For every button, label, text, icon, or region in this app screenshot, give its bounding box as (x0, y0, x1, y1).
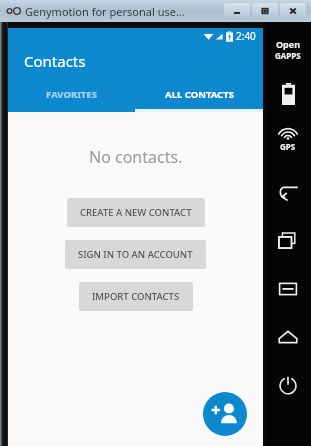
staticText: Open (276, 38, 301, 50)
staticText: GPS (280, 141, 296, 152)
button[interactable]: Home (265, 324, 311, 350)
button[interactable]: Add contact (203, 392, 247, 436)
button[interactable]: Maximize (252, 3, 278, 19)
button[interactable]: Power (265, 372, 311, 398)
staticText: Contacts (24, 51, 86, 71)
button[interactable]: ALL CONTACTS (135, 79, 263, 109)
button[interactable]: Back (265, 178, 311, 204)
button[interactable]: IMPORT CONTACTS (79, 282, 193, 311)
staticText: GAPPS (275, 50, 301, 61)
button[interactable]: Menu (265, 276, 311, 302)
button[interactable]: Recent apps (265, 228, 311, 254)
staticText: ALL CONTACTS (165, 88, 234, 101)
button[interactable]: Open (265, 38, 311, 61)
staticText: CREATE A NEW CONTACT (80, 206, 192, 219)
button[interactable]: GPS (265, 129, 311, 152)
staticText: No contacts. (89, 146, 183, 168)
staticText: Genymotion for personal use... (25, 4, 185, 19)
staticText: IMPORT CONTACTS (92, 290, 180, 303)
button[interactable]: Battery (265, 83, 311, 105)
button[interactable]: CREATE A NEW CONTACT (67, 198, 205, 227)
button[interactable]: SIGN IN TO AN ACCOUNT (65, 240, 206, 269)
button[interactable]: FAVORITES (8, 79, 135, 109)
button[interactable]: Minimize (224, 3, 250, 19)
staticText: SIGN IN TO AN ACCOUNT (78, 248, 193, 261)
staticText: 2:40 (236, 29, 256, 43)
button[interactable]: Close (280, 3, 306, 19)
staticText: FAVORITES (46, 88, 97, 101)
